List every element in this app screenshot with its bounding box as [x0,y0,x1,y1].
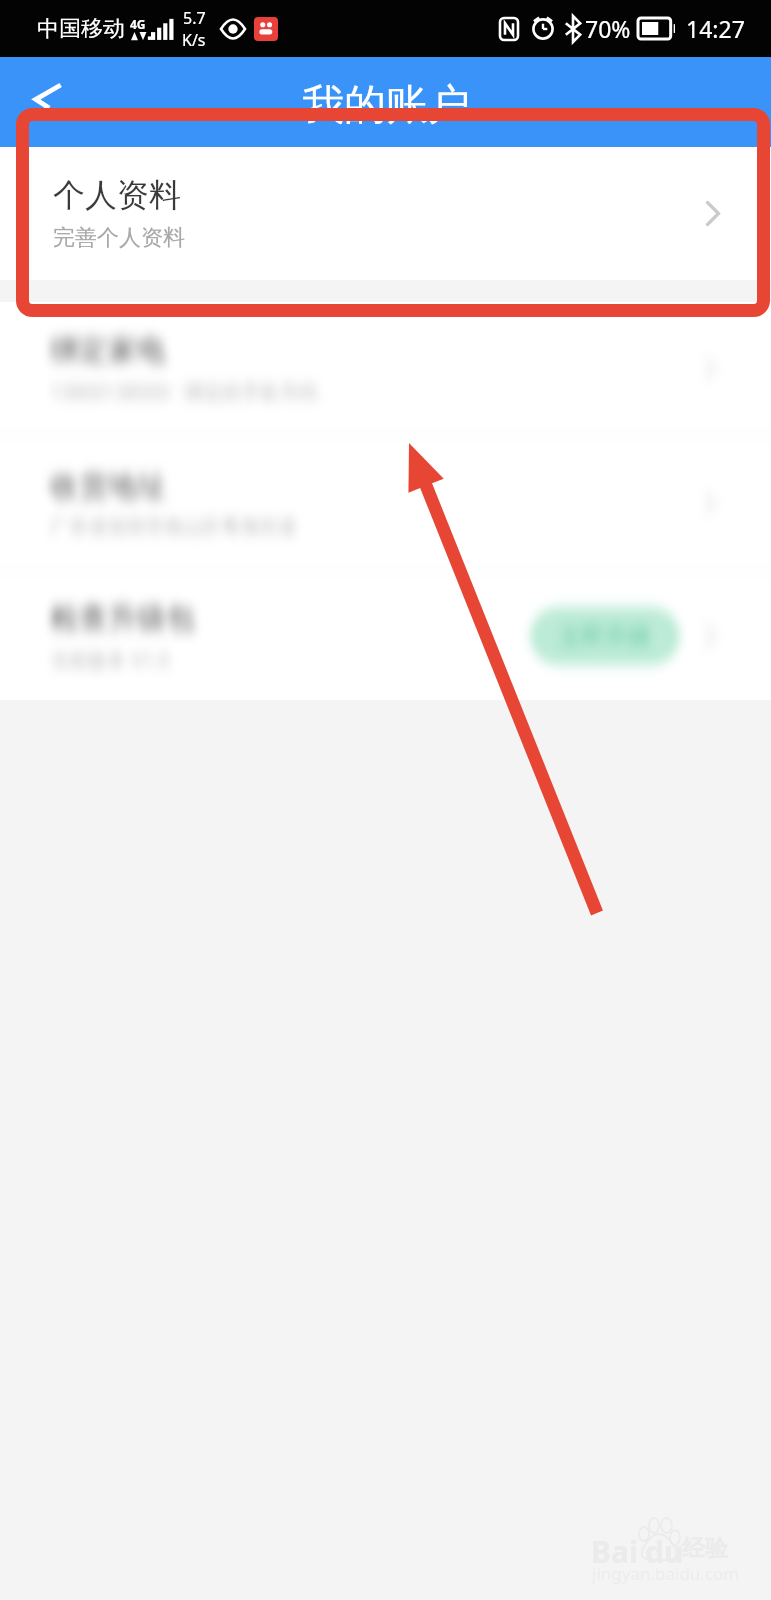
staticText: 5.7 [183,7,206,29]
staticText: 立即升级 [559,622,651,651]
button[interactable]: 个人资料 [0,147,771,280]
staticText: 经验 [682,1534,728,1563]
staticText: 绑定家电 [50,332,166,369]
staticText: 检查升级包 [50,600,195,637]
button[interactable]: Back [30,83,62,109]
button[interactable]: 立即升级 [530,607,680,665]
button[interactable]: 检查升级包 [0,572,771,700]
button[interactable]: 绑定家电 [0,302,771,435]
staticText: K/s [182,29,206,51]
button[interactable]: 收货地址 [0,436,771,571]
staticText: du [645,1531,684,1572]
staticText: 我的账户 [302,79,470,132]
staticText: 完善个人资料 [53,224,185,252]
staticText: 当前版本 V1.0 [50,647,170,673]
staticText: 4G [130,16,146,32]
staticText: 广东省深圳市南山区粤海街道 [50,515,297,539]
staticText: Bai [591,1531,638,1572]
staticText: 14:27 [686,13,745,44]
staticText: 中国移动 [37,15,125,43]
staticText: 70% [585,13,631,44]
staticText: 个人资料 [53,175,181,215]
staticText: 13800138000 · 绑定的手机号码 [50,379,318,405]
staticText: 收货地址 [50,468,166,505]
